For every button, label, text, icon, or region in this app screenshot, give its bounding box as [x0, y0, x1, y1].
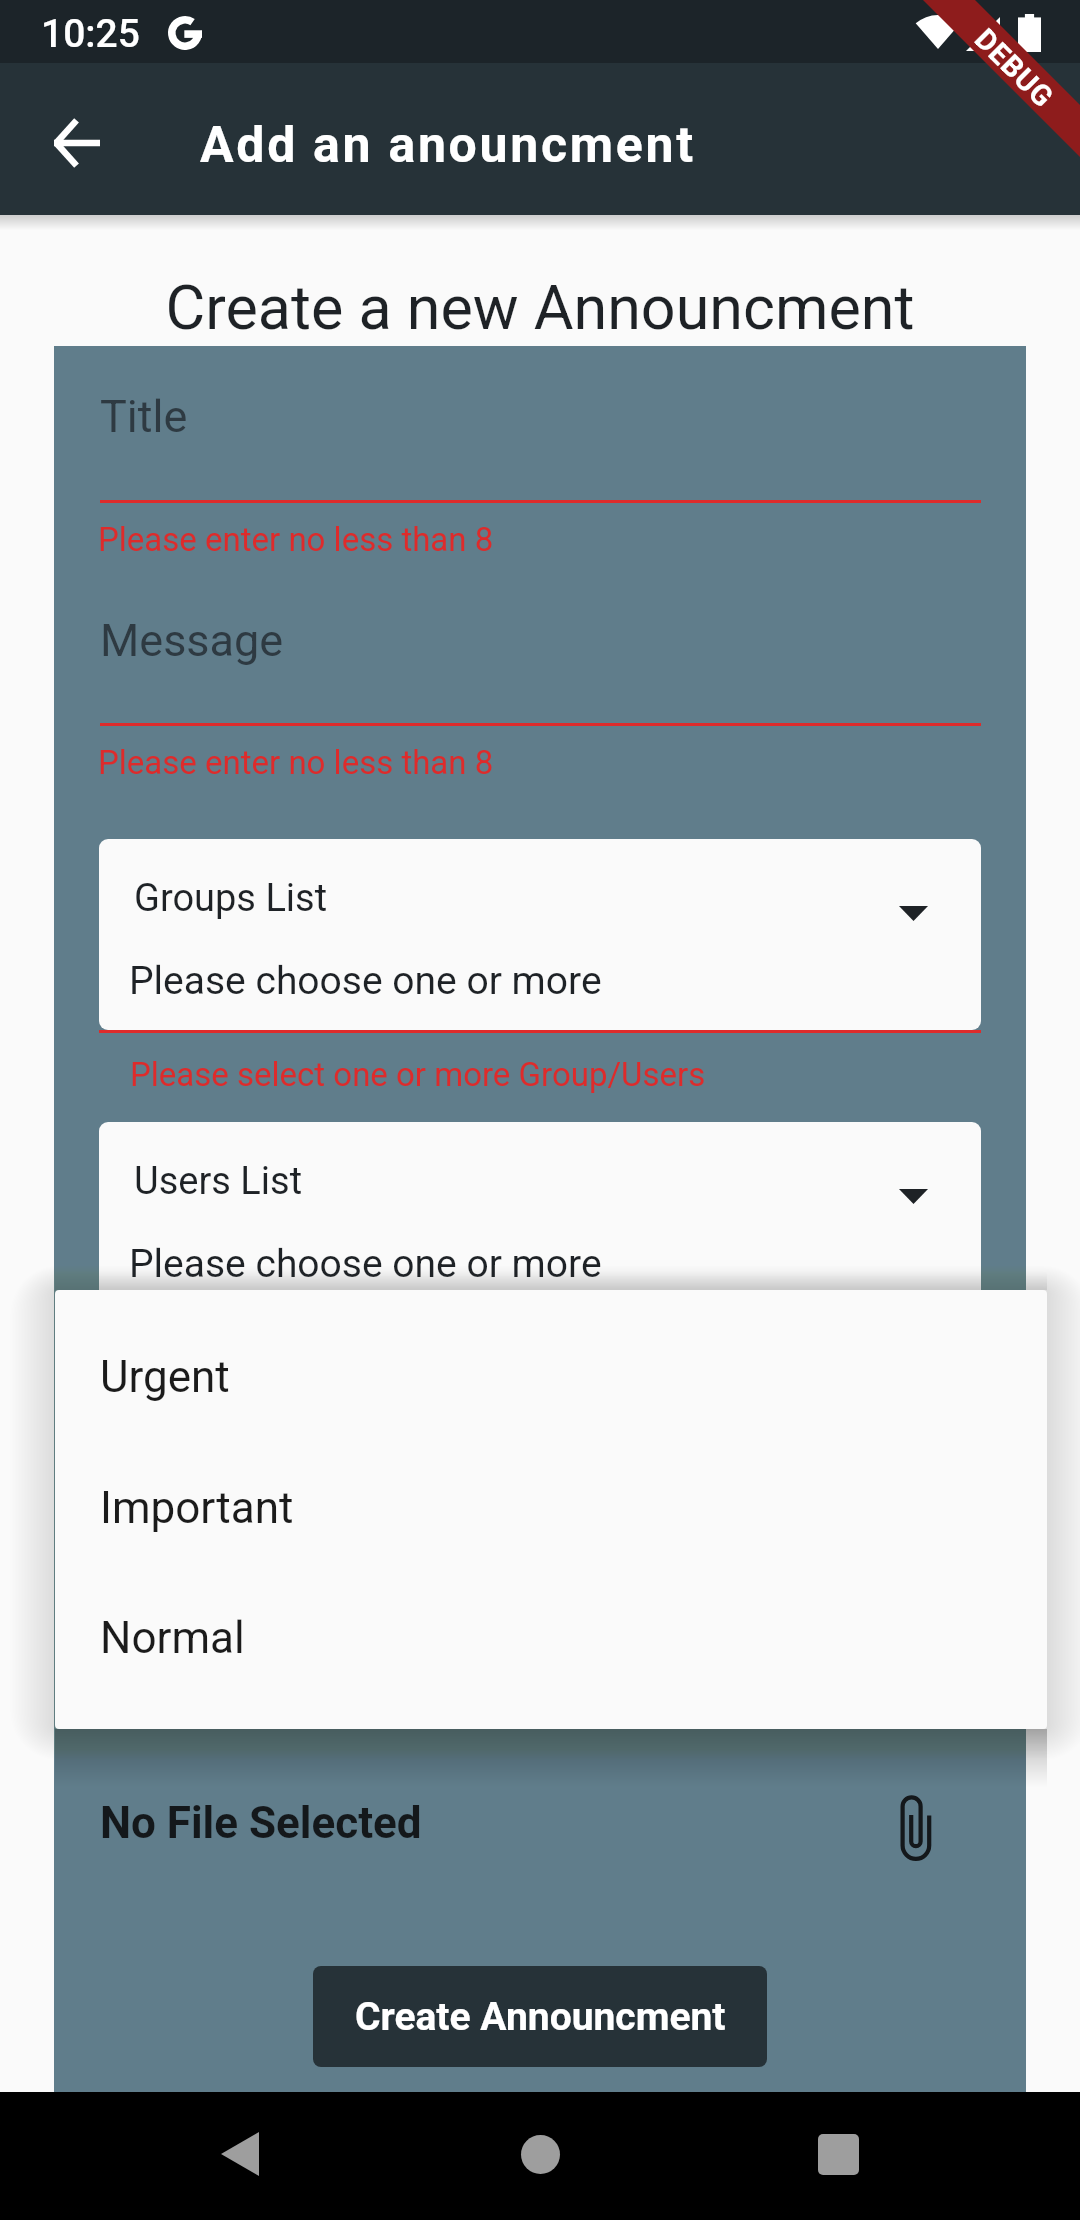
button[interactable]: Users List [99, 1122, 981, 1313]
button[interactable]: Back [170, 2092, 310, 2220]
staticText: Please select one or more Group/Users [130, 1055, 706, 1094]
button[interactable]: Normal [55, 1572, 1047, 1703]
staticText: Please enter no less than 8 [98, 520, 494, 559]
staticText: Please choose one or more [129, 1241, 602, 1287]
staticText: Important [100, 1482, 294, 1534]
staticText: DEBUG [968, 22, 1061, 115]
staticText: Title [100, 390, 188, 443]
button[interactable]: Important [55, 1442, 1047, 1573]
button[interactable]: Back [34, 100, 120, 186]
staticText: Create a new Announcment [0, 272, 1080, 343]
staticText: No File Selected [100, 1797, 422, 1849]
staticText: Message [100, 614, 284, 667]
button[interactable]: Urgent [55, 1311, 1047, 1442]
staticText: Please enter no less than 8 [98, 743, 494, 782]
button[interactable]: Attach file [896, 1795, 936, 1865]
staticText: Add an anouncment [200, 116, 696, 175]
button[interactable]: Create Announcment [313, 1966, 767, 2067]
staticText: Urgent [100, 1351, 230, 1403]
staticText: Normal [100, 1612, 245, 1664]
staticText: Users List [134, 1159, 303, 1204]
staticText: Please choose one or more [129, 958, 602, 1004]
button[interactable]: Home [470, 2092, 610, 2220]
button[interactable]: Recent apps [768, 2092, 908, 2220]
staticText: Groups List [134, 876, 328, 921]
staticText: Create Announcment [355, 1994, 726, 2040]
staticText: 10:25 [41, 11, 140, 57]
button[interactable]: Groups List [99, 839, 981, 1030]
